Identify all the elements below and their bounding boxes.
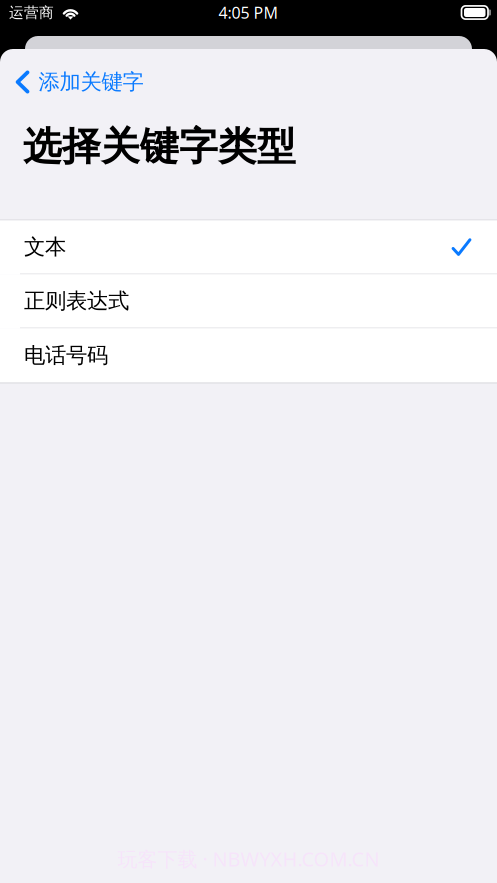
staticText: 文本 [24,234,66,260]
button[interactable]: 正则表达式 [0,274,497,328]
staticText: 4:05 PM [218,2,278,23]
button[interactable]: 电话号码 [0,328,497,382]
staticText: 电话号码 [24,342,108,369]
staticText: 选择关键字类型 [23,123,296,170]
staticText: 运营商 [9,3,54,21]
button[interactable]: 文本 [0,220,497,274]
staticText: 正则表达式 [24,288,129,314]
staticText: 玩客下载 · NBWYXH.COM.CN [117,845,379,872]
staticText: 添加关键字 [38,69,143,95]
button[interactable]: 添加关键字 [0,60,153,104]
